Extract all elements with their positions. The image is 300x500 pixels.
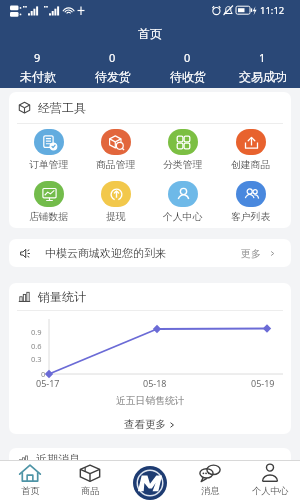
button[interactable]: 消息 — [180, 461, 240, 500]
staticText: 客户列表 — [231, 211, 271, 223]
button[interactable]: 个人中心 — [240, 461, 300, 500]
staticText: 0 — [109, 50, 116, 65]
staticText: 0 — [184, 50, 191, 65]
staticText: 商品 — [81, 485, 100, 497]
staticText: 消息 — [201, 485, 220, 497]
staticText: 更多 — [241, 247, 261, 260]
staticText: 提现 — [106, 211, 126, 223]
staticText: 未付款 — [20, 69, 56, 84]
staticText: 0.9 — [31, 327, 42, 337]
staticText: 05-18 — [143, 377, 167, 389]
staticText: 0.6 — [31, 341, 42, 351]
staticText: 0.3 — [31, 354, 42, 364]
button[interactable]: 查看更多 — [9, 418, 291, 431]
staticText: 中模云商城欢迎您的到来 — [45, 246, 166, 260]
staticText: 近五日销售统计 — [116, 395, 185, 407]
button[interactable]: 商品管理 — [82, 124, 149, 176]
staticText: 店铺数据 — [29, 211, 69, 223]
button[interactable]: 创建商品 — [217, 124, 285, 176]
staticText: 11:12 — [260, 4, 285, 17]
staticText: 销量统计 — [38, 289, 86, 304]
staticText: 0 — [41, 369, 46, 379]
staticText: 9 — [34, 50, 41, 65]
button[interactable]: 0 — [150, 46, 225, 88]
staticText: 分类管理 — [163, 159, 203, 171]
staticText: 1 — [259, 50, 266, 65]
staticText: 待发货 — [95, 69, 131, 84]
staticText: 首页 — [138, 26, 162, 41]
button[interactable]: 个人中心 — [149, 176, 217, 228]
button[interactable]: 9 — [0, 46, 75, 88]
button[interactable]: 订单管理 — [15, 124, 82, 176]
button[interactable]: 首页 — [0, 461, 60, 500]
button[interactable]: 1 — [225, 46, 300, 88]
button[interactable]: 0 — [75, 46, 150, 88]
staticText: 近期消息 — [36, 452, 80, 466]
staticText: 05-17 — [36, 377, 60, 389]
staticText: 查看更多 — [124, 418, 166, 431]
staticText: 经营工具 — [38, 100, 86, 115]
staticText: 个人中心 — [163, 211, 203, 223]
button[interactable]: 客户列表 — [217, 176, 285, 228]
button[interactable]: 商品 — [60, 461, 120, 500]
staticText: 05-19 — [251, 377, 275, 389]
staticText: 创建商品 — [231, 159, 271, 171]
staticText: 个人中心 — [252, 485, 289, 497]
staticText: 交易成功 — [239, 69, 287, 84]
button[interactable]: 分类管理 — [149, 124, 217, 176]
staticText: 商品管理 — [96, 159, 136, 171]
button[interactable]: 提现 — [82, 176, 149, 228]
button[interactable]: 中模云商城欢迎您的到来 — [9, 239, 291, 267]
staticText: 首页 — [21, 485, 40, 497]
button[interactable]: 中模云 Home — [120, 461, 180, 500]
staticText: 待收货 — [170, 69, 206, 84]
button[interactable]: 中模云 — [133, 466, 167, 500]
staticText: 订单管理 — [29, 159, 69, 171]
button[interactable]: 店铺数据 — [15, 176, 82, 228]
